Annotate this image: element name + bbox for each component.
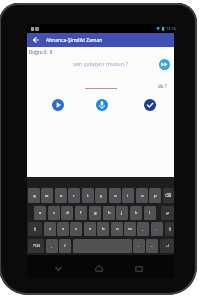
button[interactable]: ?123 (28, 239, 44, 253)
staticText: p (154, 193, 157, 199)
staticText: s (53, 210, 56, 216)
staticText: Almanca-Şimdiki Zaman (46, 37, 103, 44)
staticText: o (141, 193, 144, 199)
staticText: q (33, 193, 36, 199)
button[interactable] (135, 266, 143, 272)
button[interactable]: o (136, 188, 148, 203)
button[interactable]: b (97, 222, 109, 236)
button[interactable]: d (61, 206, 73, 220)
staticText: sen çalışıyor musun ? (27, 60, 174, 67)
staticText: :-) (166, 244, 169, 248)
button[interactable]: u (109, 188, 121, 203)
button[interactable]: p (149, 188, 161, 203)
staticText: . (138, 243, 140, 249)
button[interactable]: i (122, 188, 134, 203)
button[interactable]: r (68, 188, 80, 203)
button[interactable] (33, 37, 39, 43)
staticText: j (121, 210, 123, 216)
staticText: , (51, 243, 53, 249)
button[interactable] (144, 99, 156, 111)
staticText: d (66, 210, 69, 216)
staticText: y (100, 193, 103, 199)
staticText: . (156, 226, 158, 232)
button[interactable]: f (75, 206, 87, 220)
button[interactable] (95, 265, 103, 272)
staticText: z (49, 226, 51, 232)
button[interactable]: . (151, 222, 163, 236)
staticText: du ? (158, 83, 167, 89)
button[interactable]: ⇧ (165, 222, 174, 236)
button[interactable]: . (133, 239, 145, 253)
button[interactable]: - (146, 239, 158, 253)
staticText: k (135, 210, 138, 216)
button[interactable]: ⌫ (163, 188, 174, 203)
staticText: h (108, 210, 111, 216)
staticText: c (75, 226, 78, 232)
button[interactable] (96, 99, 108, 111)
staticText: x (62, 226, 65, 232)
staticText: 12:16 (166, 26, 176, 31)
button[interactable] (55, 266, 62, 272)
staticText: - (151, 243, 153, 249)
staticText: l (149, 210, 151, 216)
staticText: ⌫ (165, 193, 172, 198)
button[interactable]: j (116, 206, 128, 220)
button[interactable]: a (34, 206, 46, 220)
button[interactable]: z (44, 222, 56, 236)
button[interactable]: k (130, 206, 142, 220)
button[interactable]: h (103, 206, 115, 220)
button[interactable]: e (55, 188, 67, 203)
button[interactable]: q (28, 188, 40, 203)
staticText: e (60, 193, 63, 199)
button[interactable] (159, 59, 170, 70)
staticText: f (80, 210, 82, 216)
staticText: ⇧ (168, 227, 172, 232)
button[interactable]: x (57, 222, 69, 236)
staticText: ⇧ (33, 227, 37, 232)
staticText: w (45, 193, 49, 199)
staticText: / (64, 243, 66, 249)
button[interactable]: ↵ (161, 206, 174, 220)
button[interactable]: t (82, 188, 94, 203)
staticText: u (114, 193, 117, 199)
button[interactable]: s (48, 206, 60, 220)
staticText: Doğru 0 : 0 (29, 49, 53, 55)
staticText: n (116, 226, 119, 232)
button[interactable]: v (84, 222, 96, 236)
button[interactable]: / (59, 239, 71, 253)
button[interactable] (52, 99, 64, 111)
button[interactable]: m (124, 222, 136, 236)
staticText: g (94, 210, 97, 216)
button[interactable]: , (46, 239, 58, 253)
staticText: t (87, 193, 89, 199)
button[interactable]: w (41, 188, 53, 203)
button[interactable]: ⇧ (28, 222, 42, 236)
staticText: ↵ (166, 211, 170, 216)
button[interactable]: :-) (160, 239, 174, 253)
staticText: m (128, 226, 132, 232)
staticText: a (39, 210, 42, 216)
button[interactable]: c (70, 222, 82, 236)
staticText: ?123 (33, 244, 40, 248)
staticText: b (102, 226, 105, 232)
button[interactable]: g (89, 206, 101, 220)
staticText: r (73, 193, 75, 199)
button[interactable]: , (137, 222, 149, 236)
staticText: i (127, 193, 129, 199)
button[interactable]: n (111, 222, 123, 236)
staticText: v (89, 226, 92, 232)
staticText: , (142, 226, 144, 232)
button[interactable]: l (144, 206, 156, 220)
button[interactable]: y (95, 188, 107, 203)
